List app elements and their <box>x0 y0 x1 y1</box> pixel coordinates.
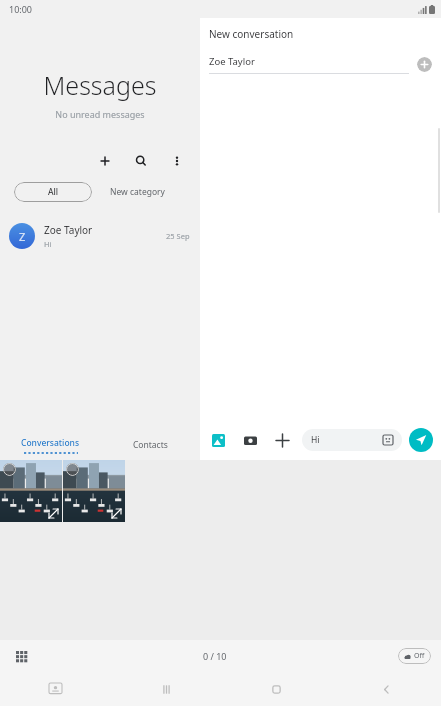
button[interactable]: Apps <box>10 645 32 667</box>
button[interactable]: Search <box>130 150 152 172</box>
staticText: 10:00 <box>9 3 33 15</box>
button[interactable]: Z <box>0 218 200 254</box>
button[interactable]: New conversation <box>94 150 116 172</box>
staticText: New category <box>110 186 165 198</box>
button[interactable]: Hi <box>302 429 402 451</box>
staticText: Hi <box>311 434 383 446</box>
button[interactable]: Conversations <box>0 430 100 460</box>
button[interactable]: New category <box>110 182 165 202</box>
staticText: All <box>48 186 59 198</box>
button[interactable]: More options <box>166 150 188 172</box>
staticText: No unread messages <box>0 108 200 120</box>
button[interactable]: Add recipient <box>417 57 432 72</box>
button[interactable]: All <box>14 182 92 202</box>
staticText: 0 / 10 <box>203 650 227 662</box>
staticText: Zoe Taylor <box>209 55 255 68</box>
staticText: New conversation <box>209 27 294 41</box>
staticText: Zoe Taylor <box>44 223 93 237</box>
staticText: Contacts <box>133 439 168 451</box>
staticText: Conversations <box>21 437 80 449</box>
button[interactable]: Contacts <box>100 430 200 460</box>
button[interactable]: Off <box>398 648 431 664</box>
button[interactable]: Screenshot <box>0 672 111 706</box>
button[interactable]: Home <box>221 672 331 706</box>
staticText: Off <box>414 651 425 661</box>
button[interactable]: Photo <box>63 460 125 522</box>
button[interactable]: Camera <box>240 430 260 450</box>
staticText: Z <box>19 229 26 244</box>
button[interactable]: Gallery <box>208 430 228 450</box>
button[interactable]: Recents <box>111 672 221 706</box>
button[interactable]: Photo <box>0 460 62 522</box>
staticText: Hi <box>44 239 52 249</box>
button[interactable]: Add attachment <box>272 430 292 450</box>
staticText: Messages <box>0 68 200 102</box>
staticText: 25 Sep <box>166 231 190 241</box>
button[interactable]: Send <box>409 428 433 452</box>
